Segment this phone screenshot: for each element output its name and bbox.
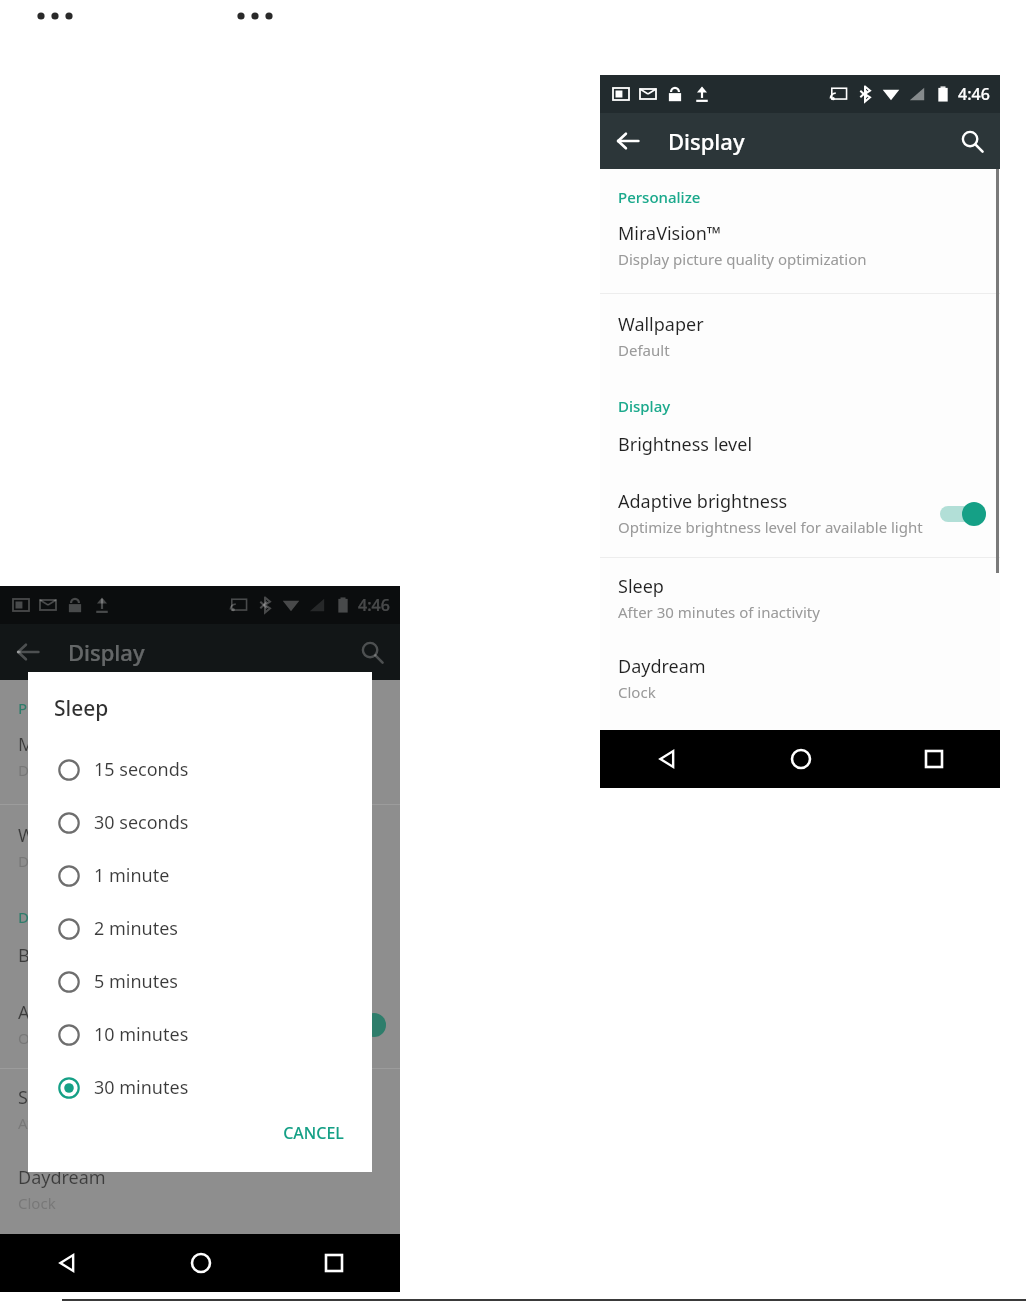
- staticText: Adaptive brightness: [18, 1000, 188, 1025]
- staticText: 15 seconds: [94, 757, 189, 782]
- staticText: Personalize: [18, 698, 101, 718]
- staticText: MiraVision™: [18, 732, 121, 757]
- button[interactable]: Adaptive brightness toggle: [340, 1012, 386, 1038]
- staticText: Default: [18, 851, 70, 871]
- button[interactable]: Brightness level: [600, 416, 1000, 459]
- staticText: Clock: [18, 1193, 56, 1213]
- staticText: 5 minutes: [94, 969, 178, 994]
- staticText: MiraVision™: [618, 221, 721, 246]
- staticText: Optimize brightness level for available …: [618, 517, 923, 537]
- staticText: Display picture quality optimization: [18, 760, 267, 780]
- staticText: Daydream: [18, 1165, 106, 1190]
- staticText: 2 minutes: [94, 916, 178, 941]
- button[interactable]: 15 seconds: [28, 743, 372, 796]
- button[interactable]: Wallpaper: [0, 805, 400, 873]
- staticText: 30 minutes: [94, 1075, 189, 1100]
- staticText: Brightness level: [18, 943, 153, 968]
- staticText: Display picture quality optimization: [618, 249, 867, 269]
- button[interactable]: Recents: [267, 1234, 400, 1292]
- button[interactable]: 30 seconds: [28, 796, 372, 849]
- button[interactable]: 30 minutes: [28, 1061, 372, 1114]
- button[interactable]: Adaptive brightness: [0, 970, 400, 1054]
- button[interactable]: Sleep: [0, 1069, 400, 1135]
- staticText: Sleep: [618, 574, 664, 599]
- button[interactable]: Daydream: [600, 624, 1000, 704]
- button[interactable]: Back: [0, 624, 56, 680]
- staticText: 10 minutes: [94, 1022, 189, 1047]
- staticText: After 30 minutes of inactivity: [618, 602, 820, 622]
- button[interactable]: Adaptive brightness toggle: [940, 501, 986, 527]
- button[interactable]: CANCEL: [273, 1116, 354, 1150]
- staticText: Wallpaper: [618, 312, 704, 337]
- staticText: Wallpaper: [18, 823, 104, 848]
- staticText: Default: [618, 340, 670, 360]
- button[interactable]: 2 minutes: [28, 902, 372, 955]
- staticText: Brightness level: [618, 432, 753, 457]
- button[interactable]: Recents: [867, 730, 1000, 788]
- button[interactable]: 5 minutes: [28, 955, 372, 1008]
- staticText: Adaptive brightness: [618, 489, 788, 514]
- staticText: 30 seconds: [94, 810, 189, 835]
- staticText: Display: [68, 637, 145, 667]
- staticText: Optimize brightness level for available …: [18, 1028, 323, 1048]
- staticText: Display: [618, 396, 671, 416]
- button[interactable]: Daydream: [0, 1135, 400, 1215]
- staticText: 4:46: [958, 83, 990, 105]
- button[interactable]: Home: [734, 730, 867, 788]
- button[interactable]: Search: [944, 113, 1000, 169]
- staticText: Clock: [618, 682, 656, 702]
- button[interactable]: 1 minute: [28, 849, 372, 902]
- staticText: CANCEL: [283, 1122, 344, 1144]
- button[interactable]: Sleep: [600, 558, 1000, 624]
- button[interactable]: Back: [0, 1234, 134, 1292]
- button[interactable]: Back: [600, 730, 734, 788]
- staticText: 4:46: [358, 594, 390, 616]
- staticText: 1 minute: [94, 863, 170, 888]
- staticText: Personalize: [618, 187, 701, 207]
- staticText: After 30 minutes of inactivity: [18, 1113, 220, 1133]
- button[interactable]: Home: [134, 1234, 267, 1292]
- staticText: Sleep: [18, 1085, 64, 1110]
- button[interactable]: Adaptive brightness: [600, 459, 1000, 543]
- button[interactable]: Brightness level: [0, 927, 400, 970]
- staticText: Display: [18, 907, 71, 927]
- button[interactable]: MiraVision™: [600, 207, 1000, 271]
- button[interactable]: 10 minutes: [28, 1008, 372, 1061]
- staticText: Sleep: [54, 694, 109, 723]
- button[interactable]: Search: [344, 624, 400, 680]
- button[interactable]: Back: [600, 113, 656, 169]
- button[interactable]: Wallpaper: [600, 294, 1000, 362]
- button[interactable]: MiraVision™: [0, 718, 400, 782]
- staticText: Daydream: [618, 654, 706, 679]
- staticText: Display: [668, 126, 745, 156]
